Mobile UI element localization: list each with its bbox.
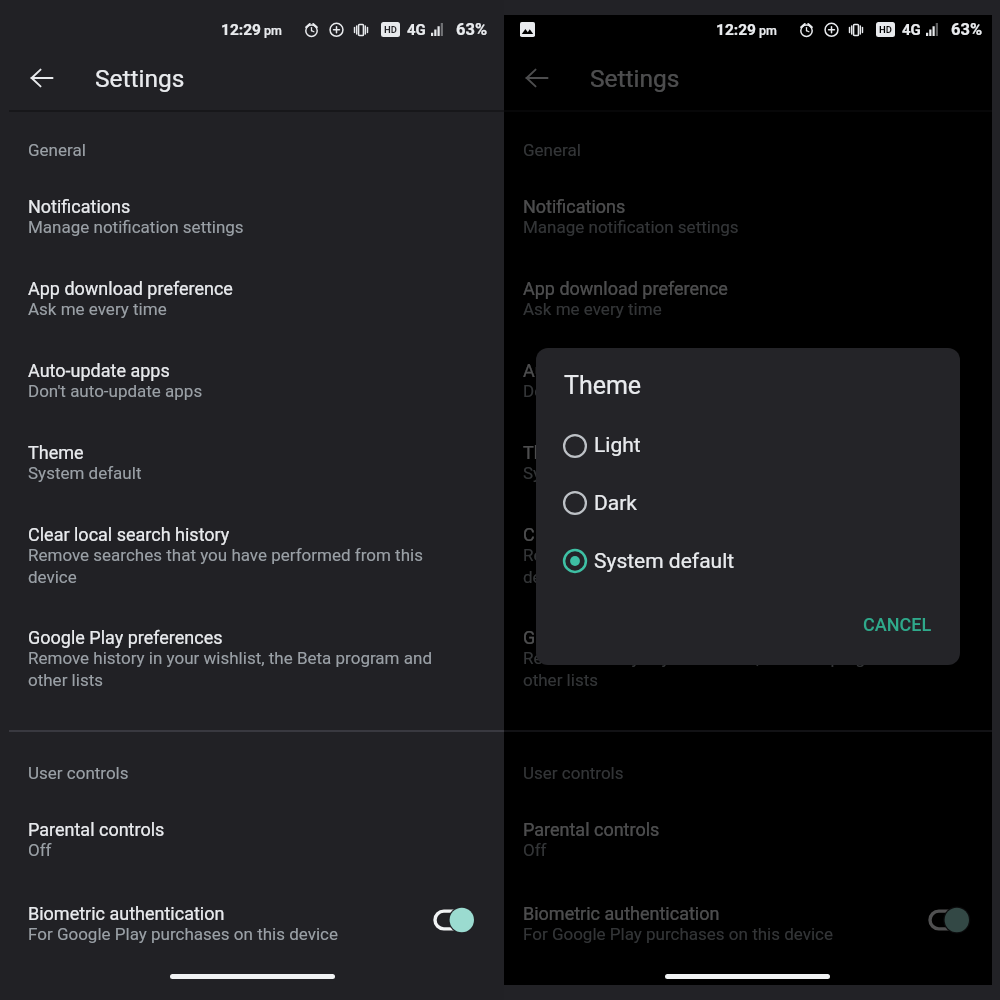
staticText: Notifications <box>28 196 131 217</box>
button[interactable]: Google Play preferences <box>495 627 999 690</box>
button[interactable]: Biometric authentication toggle <box>930 907 969 933</box>
staticText: Parental controls <box>28 819 165 840</box>
staticText: General <box>28 140 86 160</box>
staticText: General <box>523 140 581 160</box>
button[interactable]: Biometric authentication <box>495 903 999 944</box>
staticText: Don't auto-update apps <box>523 381 943 401</box>
button[interactable]: Parental controls <box>0 819 504 860</box>
button[interactable]: Auto-update apps <box>495 360 999 401</box>
button[interactable]: App download preference <box>0 278 504 319</box>
staticText: For Google Play purchases on this device <box>523 924 932 944</box>
button[interactable]: CANCEL <box>835 607 960 642</box>
button[interactable]: Notifications <box>0 196 504 237</box>
staticText: Auto-update apps <box>523 360 665 381</box>
staticText: Ask me every time <box>523 299 943 319</box>
staticText: Don't auto-update apps <box>28 381 448 401</box>
staticText: Settings <box>95 64 185 93</box>
staticText: Clear local search history <box>28 524 230 545</box>
staticText: 4G <box>902 21 921 39</box>
staticText: pm <box>759 23 777 38</box>
staticText: Theme <box>28 442 84 463</box>
staticText: Notifications <box>523 196 626 217</box>
staticText: 63% <box>456 20 488 39</box>
staticText: Biometric authentication <box>28 903 225 924</box>
staticText: App download preference <box>28 278 233 299</box>
staticText: Manage notification settings <box>28 217 448 237</box>
staticText: Remove history in your wishlist, the Bet… <box>28 648 448 690</box>
button[interactable]: Theme <box>0 442 504 483</box>
staticText: User controls <box>523 763 624 783</box>
staticText: pm <box>264 23 282 38</box>
button[interactable]: Auto-update apps <box>0 360 504 401</box>
staticText: Remove searches that you have performed … <box>523 545 943 587</box>
button[interactable]: Biometric authentication <box>0 903 504 944</box>
button[interactable]: System default <box>536 532 960 590</box>
staticText: Settings <box>590 64 680 93</box>
staticText: 12:29 <box>221 21 261 39</box>
button[interactable]: Back <box>22 58 62 98</box>
staticText: Remove searches that you have performed … <box>28 545 448 587</box>
staticText: App download preference <box>523 278 728 299</box>
staticText: HD <box>879 24 892 35</box>
staticText: Biometric authentication <box>523 903 720 924</box>
button[interactable]: Clear local search history <box>495 524 999 587</box>
staticText: Google Play preferences <box>523 627 718 648</box>
button[interactable]: Light <box>536 417 960 474</box>
button[interactable]: App download preference <box>495 278 999 319</box>
staticText: Theme <box>523 442 579 463</box>
staticText: Manage notification settings <box>523 217 943 237</box>
staticText: For Google Play purchases on this device <box>28 924 437 944</box>
staticText: Light <box>594 433 641 458</box>
button[interactable]: Notifications <box>495 196 999 237</box>
staticText: CANCEL <box>863 614 932 635</box>
button[interactable]: Google Play preferences <box>0 627 504 690</box>
button[interactable]: Back <box>517 58 557 98</box>
button[interactable]: Theme <box>495 442 999 483</box>
staticText: 4G <box>407 21 426 39</box>
staticText: System default <box>28 463 448 483</box>
staticText: Remove history in your wishlist, the Bet… <box>523 648 943 690</box>
staticText: 12:29 <box>716 21 756 39</box>
staticText: Clear local search history <box>523 524 725 545</box>
button[interactable]: Clear local search history <box>0 524 504 587</box>
staticText: Off <box>28 840 448 860</box>
staticText: Parental controls <box>523 819 660 840</box>
staticText: 63% <box>951 20 983 39</box>
staticText: Off <box>523 840 943 860</box>
staticText: HD <box>384 24 397 35</box>
staticText: User controls <box>28 763 129 783</box>
staticText: Dark <box>594 491 637 516</box>
staticText: System default <box>523 463 943 483</box>
staticText: Google Play preferences <box>28 627 223 648</box>
staticText: Auto-update apps <box>28 360 170 381</box>
staticText: Theme <box>564 371 642 400</box>
staticText: Ask me every time <box>28 299 448 319</box>
button[interactable]: Biometric authentication toggle <box>435 907 474 933</box>
button[interactable]: Parental controls <box>495 819 999 860</box>
button[interactable]: Dark <box>536 474 960 532</box>
staticText: System default <box>594 549 735 574</box>
